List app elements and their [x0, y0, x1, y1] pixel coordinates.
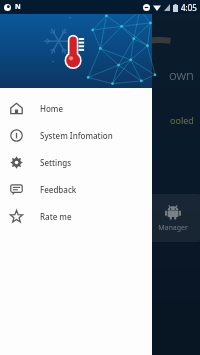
button[interactable]: Feedback [0, 176, 152, 203]
button[interactable]: Manager [146, 194, 200, 242]
staticText: Home [40, 103, 64, 114]
staticText: Rate me [40, 211, 72, 222]
staticText: 4:05 [181, 2, 197, 13]
staticText: Feedback [40, 184, 77, 195]
button[interactable]: Settings [0, 149, 152, 176]
staticText: System Infomation [40, 130, 113, 141]
button[interactable]: System Infomation [0, 122, 152, 149]
staticText: Settings [40, 157, 72, 168]
staticText: ooled [170, 114, 194, 126]
staticText: Manager [158, 223, 188, 233]
button[interactable]: Home [0, 95, 152, 122]
staticText: N [15, 2, 21, 12]
staticText: own [169, 66, 194, 84]
button[interactable]: Rate me [0, 203, 152, 230]
